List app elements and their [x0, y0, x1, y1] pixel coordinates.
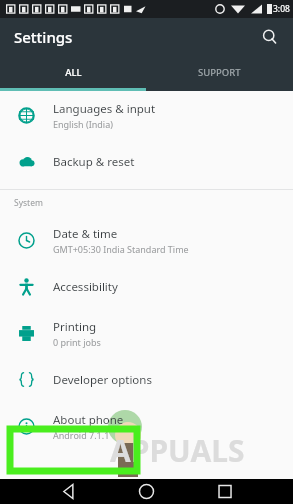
staticText: Developer options	[53, 372, 152, 388]
staticText: English (India)	[53, 118, 113, 130]
button[interactable]: Date & time	[0, 216, 293, 264]
staticText: System	[14, 197, 43, 209]
button[interactable]: Accessibility	[0, 264, 293, 309]
button[interactable]: Backup & reset	[0, 139, 293, 184]
button[interactable]: Languages & input	[0, 91, 293, 139]
staticText: ALL	[65, 66, 82, 79]
staticText: Backup & reset	[53, 154, 135, 170]
staticText: 3:08	[273, 3, 290, 15]
staticText: 0 print jobs	[53, 336, 101, 348]
staticText: GMT+05:30 India Standard Time	[53, 243, 189, 255]
button[interactable]: Developer options	[0, 357, 293, 402]
button[interactable]: Search	[255, 22, 285, 52]
staticText: Languages & input	[53, 101, 156, 117]
staticText: Printing	[53, 319, 97, 335]
button[interactable]: About phone	[0, 402, 293, 450]
staticText: About phone	[53, 412, 124, 428]
button[interactable]: Printing	[0, 309, 293, 357]
button[interactable]: ALL	[0, 56, 146, 88]
staticText: SUPPORT	[198, 66, 241, 79]
staticText: APPUALS	[110, 430, 245, 471]
button[interactable]: SUPPORT	[146, 56, 293, 88]
staticText: Date & time	[53, 226, 118, 242]
staticText: Android 7.1.1	[53, 429, 110, 441]
staticText: Accessibility	[53, 279, 118, 295]
staticText: Settings	[14, 27, 73, 47]
